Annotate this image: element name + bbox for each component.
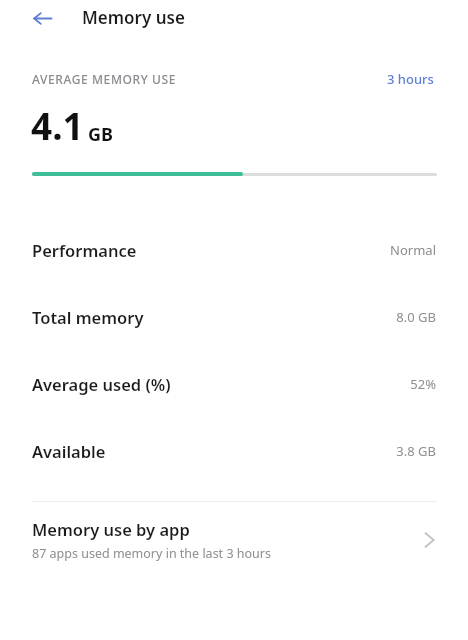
staticText: Available — [32, 440, 106, 462]
button[interactable]: Average used (%) — [0, 350, 468, 417]
staticText: Memory use by app — [32, 518, 190, 540]
staticText: Memory use — [82, 6, 185, 29]
staticText: Total memory — [32, 306, 144, 328]
staticText: AVERAGE MEMORY USE — [32, 71, 176, 87]
staticText: 3 hours — [387, 70, 434, 88]
staticText: Average used (%) — [32, 373, 171, 395]
staticText: Performance — [32, 239, 137, 261]
button[interactable]: Back — [26, 3, 58, 33]
button[interactable]: Total memory — [0, 283, 468, 350]
staticText: 3.8 GB — [396, 442, 436, 460]
staticText: 52% — [410, 375, 436, 393]
button[interactable]: Memory use by app — [0, 502, 468, 578]
staticText: 87 apps used memory in the last 3 hours — [32, 545, 271, 562]
staticText: Normal — [390, 241, 436, 259]
staticText: 4.1 — [31, 100, 84, 150]
button[interactable]: Available — [0, 417, 468, 484]
button[interactable]: 3 hours — [385, 67, 436, 91]
staticText: 8.0 GB — [396, 308, 436, 326]
staticText: GB — [88, 122, 114, 147]
button[interactable]: Performance — [0, 216, 468, 283]
